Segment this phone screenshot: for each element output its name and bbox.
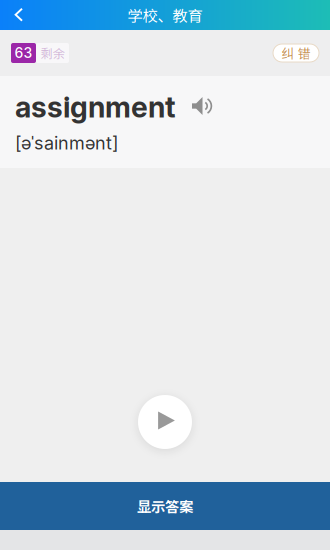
button[interactable]: 显示答案 (0, 482, 330, 530)
staticText: 显示答案 (137, 496, 193, 516)
staticText: 学校、教育 (127, 4, 202, 26)
button[interactable]: Pronounce (192, 97, 216, 117)
staticText: 纠 错 (281, 44, 310, 62)
button[interactable]: Play (134, 391, 196, 453)
staticText: assignment (15, 90, 176, 124)
staticText: 63 (14, 44, 32, 61)
staticText: [əˈsainmənt] (15, 132, 119, 154)
staticText: 剩余 (40, 44, 64, 62)
button[interactable]: 纠 错 (273, 44, 319, 62)
button[interactable]: Back (0, 0, 38, 30)
